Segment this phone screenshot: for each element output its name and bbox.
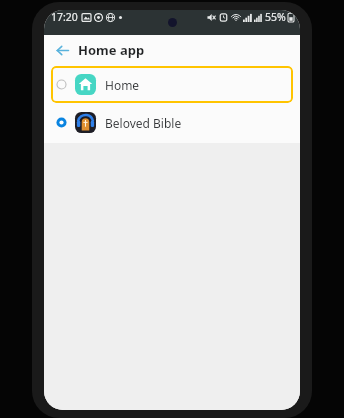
staticText: Beloved Bible [105, 115, 182, 131]
staticText: Home [105, 77, 140, 93]
button[interactable]: Back [52, 40, 72, 60]
staticText: 55% [265, 10, 286, 24]
button[interactable]: Home [51, 66, 293, 103]
staticText: Home app [78, 41, 145, 59]
staticText: 17:20 [51, 10, 78, 24]
button[interactable]: Beloved Bible [44, 105, 300, 140]
